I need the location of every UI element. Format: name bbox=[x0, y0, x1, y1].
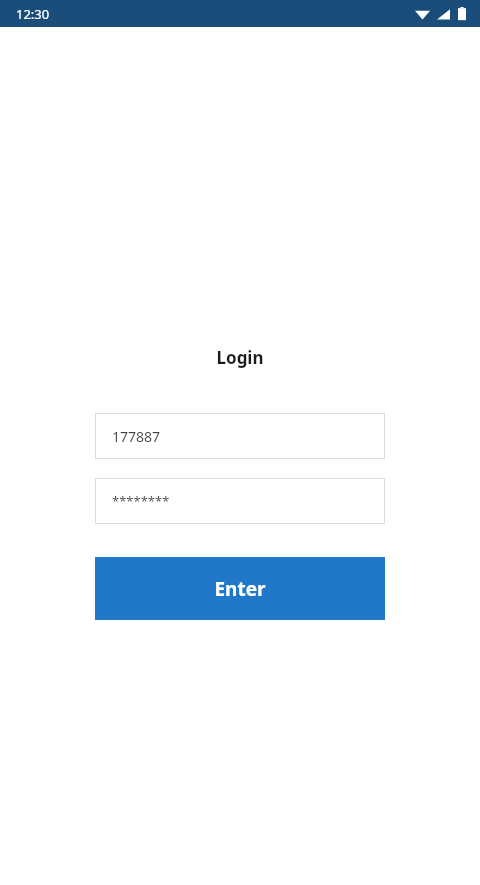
button[interactable]: Enter bbox=[95, 557, 385, 620]
button[interactable]: 177887 bbox=[95, 413, 385, 459]
staticText: Enter bbox=[214, 576, 266, 602]
button[interactable]: ******** bbox=[95, 478, 385, 524]
staticText: ******** bbox=[112, 492, 170, 510]
staticText: 12:30 bbox=[16, 5, 50, 23]
staticText: 177887 bbox=[112, 427, 161, 446]
staticText: Login bbox=[216, 346, 264, 369]
